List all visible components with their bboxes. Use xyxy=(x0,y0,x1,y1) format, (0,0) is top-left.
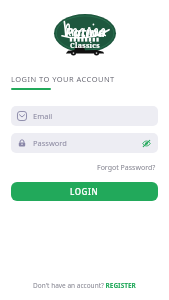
staticText: Classics xyxy=(70,41,101,51)
button[interactable]: Forgot Password? xyxy=(95,162,158,174)
staticText: LOGIN xyxy=(70,186,99,197)
staticText: Email xyxy=(33,111,53,121)
staticText: Forgot Password? xyxy=(97,163,156,173)
button[interactable]: Don't have an account? REGISTER xyxy=(30,279,139,292)
staticText: Password xyxy=(33,138,67,148)
button[interactable]: LOGIN xyxy=(11,182,158,201)
staticText: LOGIN TO YOUR ACCOUNT xyxy=(11,74,115,84)
other: Email xyxy=(17,111,27,121)
button[interactable]: Toggle password visibility xyxy=(141,138,152,149)
button[interactable]: Password xyxy=(11,133,158,153)
staticText: Don't have an account? REGISTER xyxy=(33,281,136,290)
staticText: Patina xyxy=(65,23,106,41)
other: Password xyxy=(17,138,27,148)
button[interactable]: Email xyxy=(11,106,158,126)
